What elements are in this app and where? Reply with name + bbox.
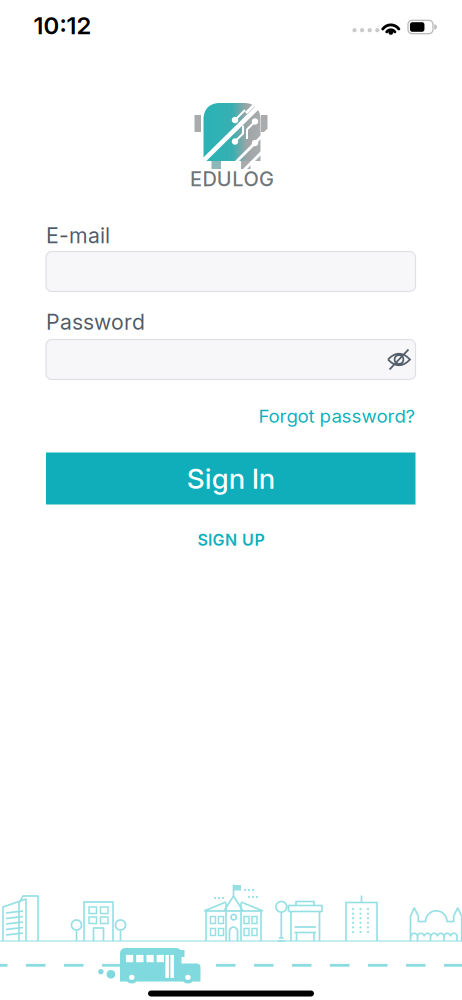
staticText: E-mail xyxy=(46,223,110,248)
staticText: Password xyxy=(46,309,145,335)
staticText: 10:12 xyxy=(33,11,91,40)
button[interactable]: Show password xyxy=(380,347,418,371)
staticText: SIGN UP xyxy=(197,531,264,549)
staticText: Forgot password? xyxy=(258,405,415,427)
button[interactable]: SIGN UP xyxy=(151,525,311,555)
staticText: E xyxy=(190,167,202,191)
staticText: U xyxy=(217,167,232,191)
staticText: G xyxy=(259,167,274,191)
staticText: Sign In xyxy=(187,462,275,495)
button[interactable]: Forgot password? xyxy=(46,405,415,427)
staticText: O xyxy=(244,167,259,191)
staticText: D xyxy=(202,167,216,191)
staticText: L xyxy=(232,167,243,191)
button[interactable]: Sign In xyxy=(46,452,415,504)
